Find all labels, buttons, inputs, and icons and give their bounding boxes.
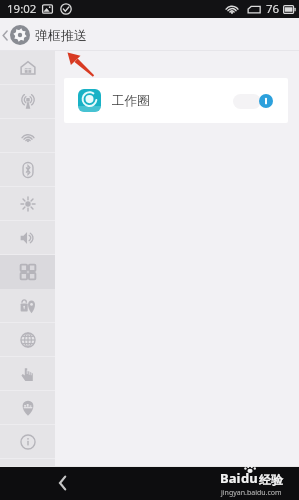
button[interactable]: 工作圈 (64, 78, 288, 123)
button[interactable]: globe (0, 323, 55, 357)
staticText: Bai (220, 469, 241, 487)
button[interactable]: brightness (0, 187, 55, 221)
staticText: du (241, 469, 258, 487)
button[interactable]: wifi (0, 119, 55, 153)
button[interactable]: bluetooth (0, 153, 55, 187)
button[interactable]: hand (0, 357, 55, 391)
button[interactable]: Back (48, 469, 76, 497)
button[interactable]: Toggle 工作圈 (233, 92, 273, 110)
staticText: 工作圈 (112, 93, 150, 109)
button[interactable]: info (0, 425, 55, 459)
staticText: 19:02 (7, 1, 37, 17)
button[interactable]: home (0, 51, 55, 85)
button[interactable]: notify (0, 391, 55, 425)
button[interactable]: volume (0, 221, 55, 255)
button[interactable]: Back (0, 18, 32, 51)
button[interactable]: grid (0, 255, 55, 289)
staticText: 76 (266, 1, 280, 17)
staticText: jingyan.baidu.com (221, 488, 282, 498)
button[interactable]: privacy (0, 289, 55, 323)
staticText: 弹框推送 (35, 27, 87, 43)
button[interactable]: hotspot (0, 85, 55, 119)
staticText: 经验 (259, 472, 283, 487)
